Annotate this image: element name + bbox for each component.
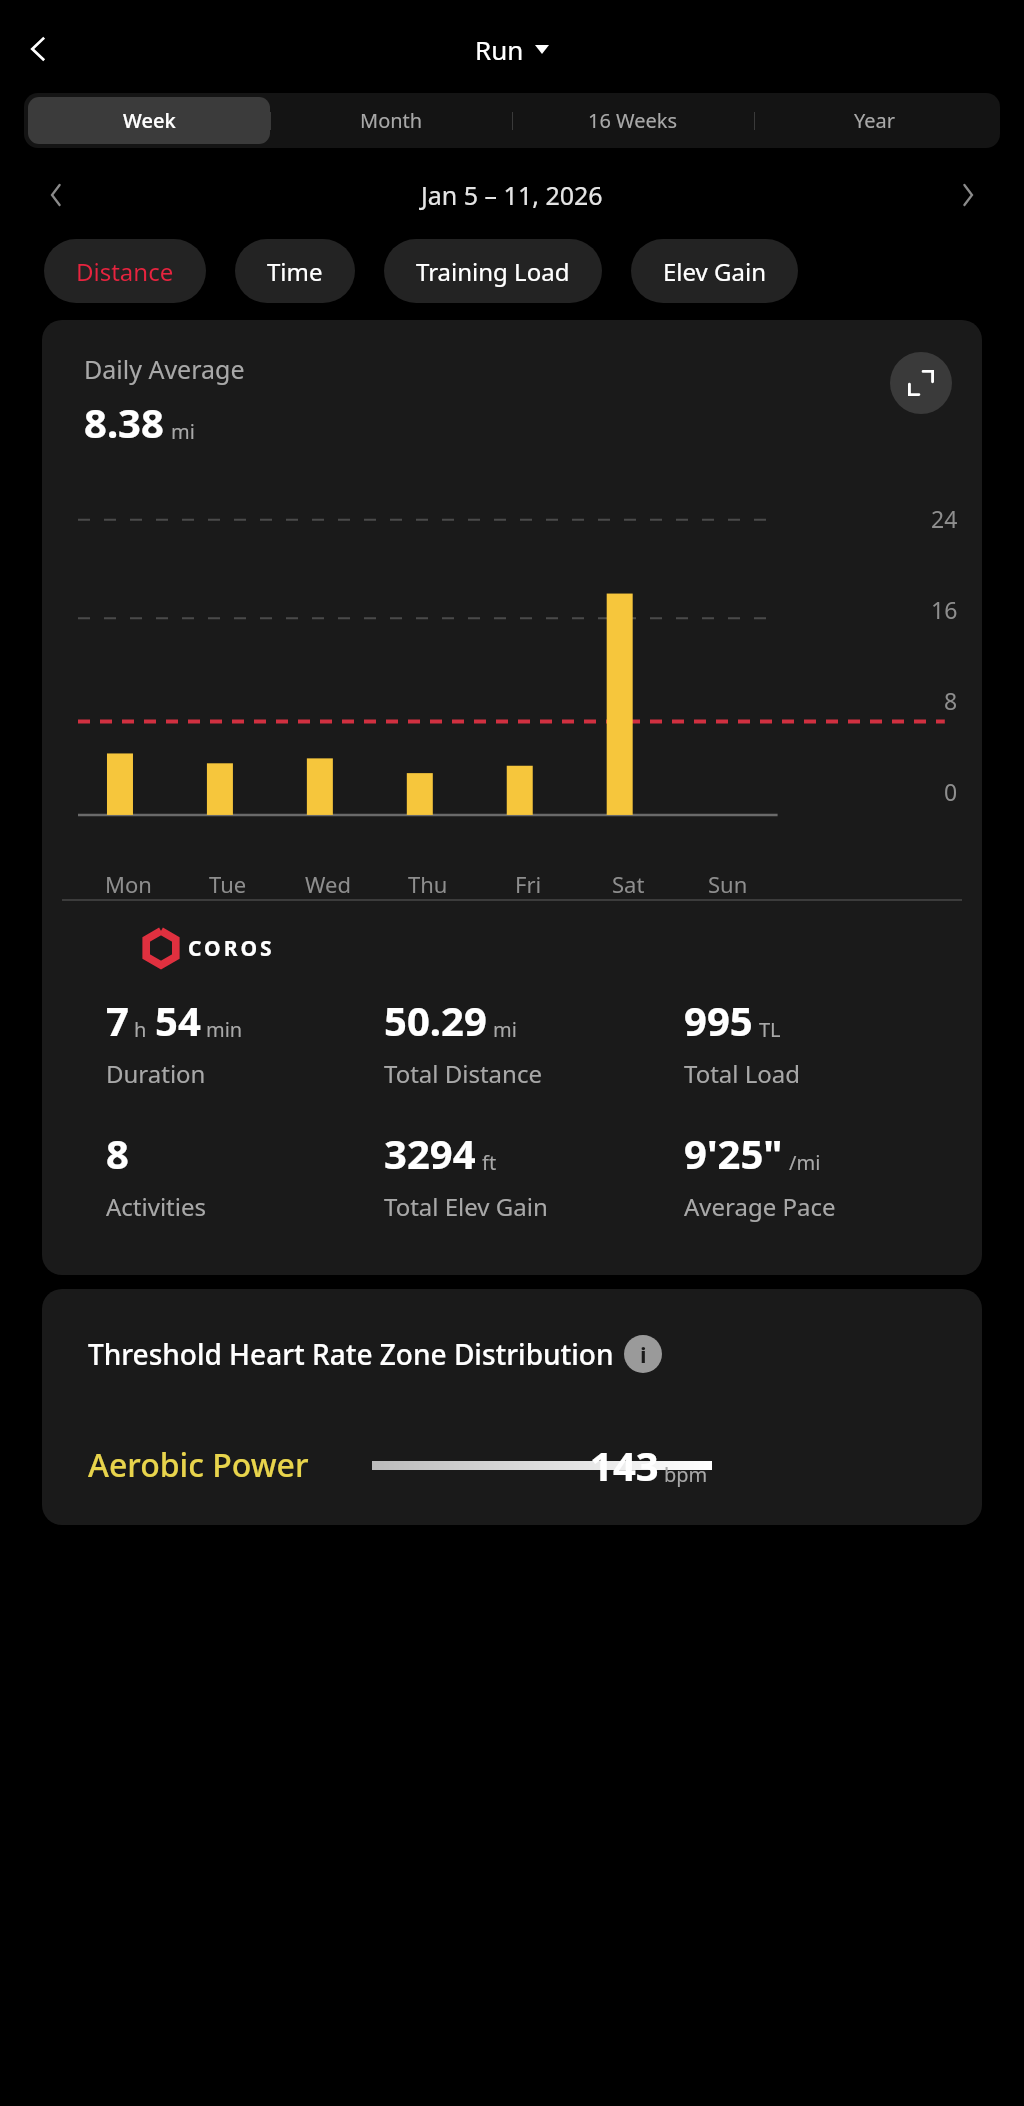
staticText: 24 <box>931 503 958 534</box>
staticText: Aerobic Power <box>88 1443 309 1487</box>
staticText: mi <box>171 418 195 445</box>
staticText: 8 <box>106 1126 129 1180</box>
staticText: Distance <box>76 255 174 288</box>
staticText: Total Load <box>684 1057 801 1090</box>
button[interactable]: Training Load <box>384 239 602 303</box>
staticText: i <box>640 1339 647 1369</box>
button[interactable]: Next week <box>944 171 992 219</box>
staticText: Wed <box>305 869 351 899</box>
staticText: 7 <box>106 993 129 1047</box>
staticText: Threshold Heart Rate Zone Distribution <box>88 1335 614 1373</box>
staticText: Elev Gain <box>663 255 766 288</box>
button[interactable]: Distance <box>44 239 206 303</box>
button[interactable]: Previous week <box>32 171 80 219</box>
staticText: 16 <box>931 594 958 625</box>
staticText: TL <box>759 1016 781 1043</box>
button[interactable]: Time <box>235 239 355 303</box>
staticText: 3294 <box>384 1126 476 1180</box>
staticText: Total Distance <box>384 1057 542 1090</box>
staticText: ft <box>482 1149 497 1176</box>
staticText: Sat <box>612 869 645 899</box>
button[interactable]: Expand chart <box>890 352 952 414</box>
staticText: 54 <box>155 993 201 1047</box>
staticText: Average Pace <box>684 1190 836 1223</box>
staticText: 50.29 <box>384 993 487 1047</box>
staticText: /mi <box>789 1149 821 1176</box>
staticText: Fri <box>515 869 542 899</box>
staticText: Sun <box>708 869 748 899</box>
staticText: min <box>206 1016 243 1043</box>
staticText: Tue <box>209 869 247 899</box>
staticText: Mon <box>105 869 152 899</box>
button[interactable]: Week <box>28 97 270 144</box>
staticText: Time <box>267 255 323 288</box>
staticText: 143 <box>590 1438 659 1492</box>
button[interactable]: Year <box>754 97 996 144</box>
staticText: Total Elev Gain <box>384 1190 548 1223</box>
staticText: bpm <box>664 1461 708 1488</box>
staticText: 9'25" <box>684 1126 783 1180</box>
button[interactable]: 16 Weeks <box>512 97 754 144</box>
staticText: Daily Average <box>84 352 245 386</box>
staticText: 8 <box>944 685 958 716</box>
staticText: 995 <box>684 993 753 1047</box>
staticText: Week <box>123 107 176 134</box>
staticText: Thu <box>408 869 448 899</box>
button[interactable]: Back <box>10 21 66 77</box>
button[interactable]: Info <box>624 1335 662 1373</box>
staticText: COROS <box>188 934 275 963</box>
staticText: 16 Weeks <box>588 107 678 134</box>
staticText: Jan 5 – 11, 2026 <box>421 178 603 212</box>
staticText: Duration <box>106 1057 206 1090</box>
staticText: 8.38 <box>84 395 164 449</box>
staticText: Activities <box>106 1190 206 1223</box>
staticText: Year <box>854 107 896 134</box>
staticText: Month <box>360 107 423 134</box>
staticText: Training Load <box>416 255 570 288</box>
button[interactable]: Run <box>467 28 557 71</box>
staticText: mi <box>493 1016 517 1043</box>
button[interactable]: Month <box>270 97 512 144</box>
staticText: 0 <box>944 776 958 807</box>
button[interactable]: Elev Gain <box>631 239 798 303</box>
staticText: h <box>134 1016 147 1043</box>
staticText: Run <box>475 32 524 67</box>
